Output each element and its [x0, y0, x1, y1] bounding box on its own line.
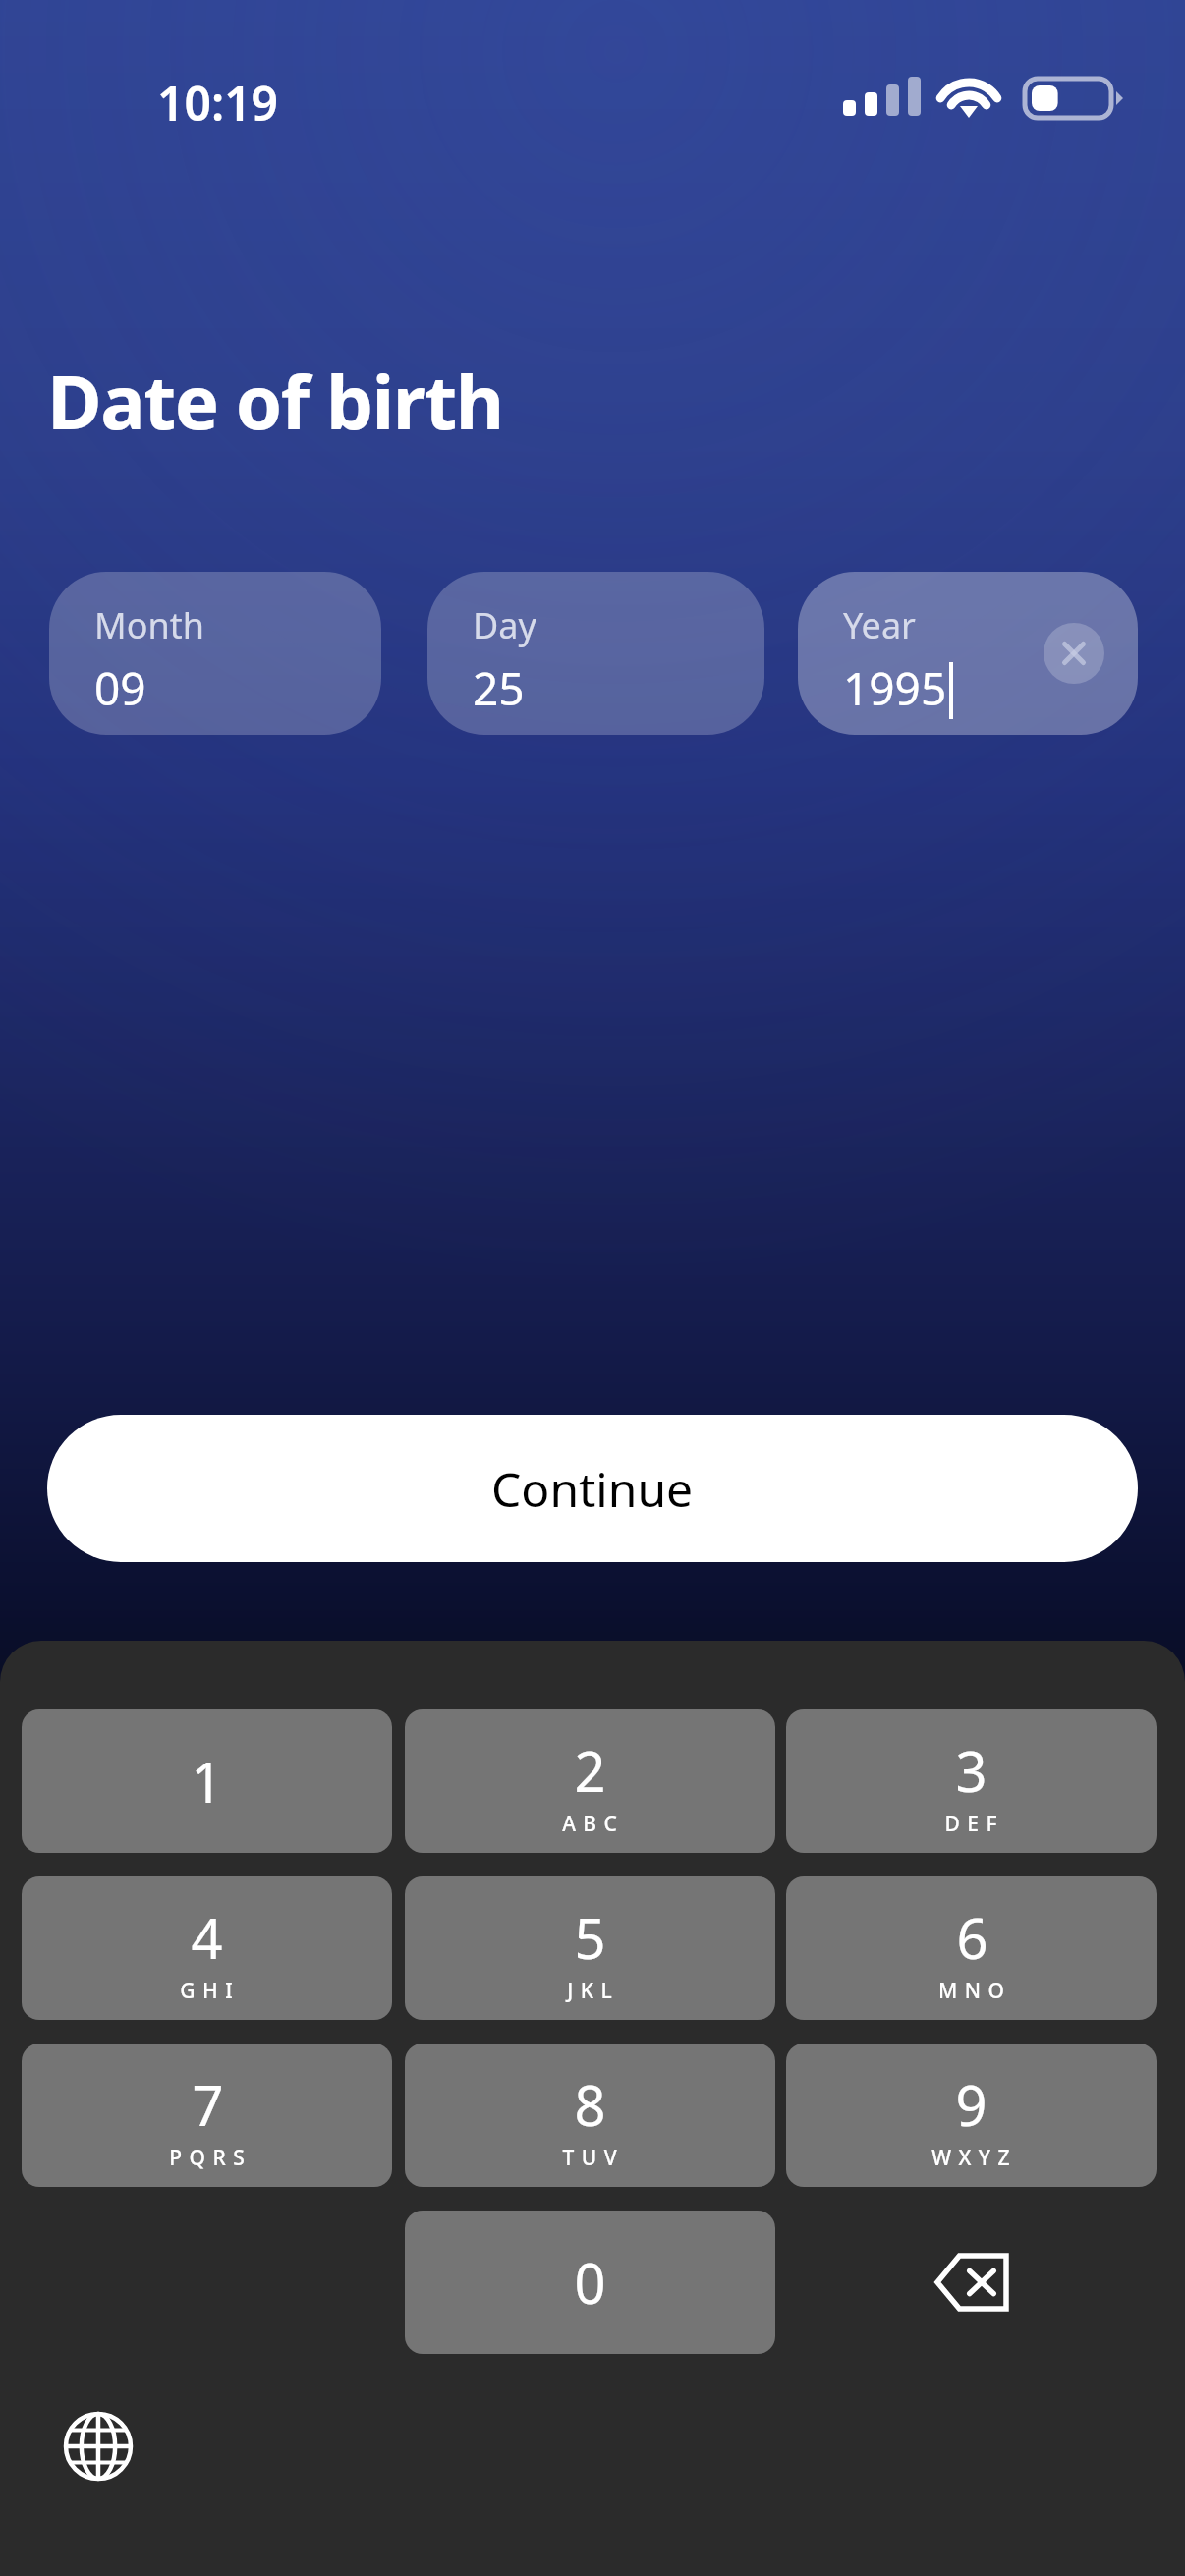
button[interactable]: Switch keyboard language	[59, 2407, 138, 2486]
staticText: 10:19	[157, 71, 279, 135]
staticText: 5	[574, 1900, 606, 1975]
staticText: Month	[94, 601, 204, 649]
button[interactable]: Day	[427, 572, 764, 735]
staticText: W X Y Z	[931, 2144, 1011, 2172]
staticText: 9	[955, 2067, 987, 2142]
button[interactable]: 9	[786, 2044, 1157, 2187]
staticText: 1	[191, 1744, 223, 1819]
button[interactable]: 6	[786, 1876, 1157, 2020]
staticText: 2	[574, 1733, 606, 1808]
staticText: 1995	[843, 657, 947, 719]
staticText: T U V	[562, 2144, 618, 2172]
staticText: 09	[94, 657, 146, 719]
button[interactable]: 4	[22, 1876, 392, 2020]
staticText: 25	[473, 657, 525, 719]
button[interactable]: 0	[405, 2211, 775, 2354]
staticText: 4	[191, 1900, 223, 1975]
staticText: 6	[956, 1900, 988, 1975]
button[interactable]: 3	[786, 1709, 1157, 1853]
staticText: 7	[192, 2067, 224, 2142]
staticText: Year	[843, 601, 916, 649]
staticText: 0	[574, 2245, 606, 2320]
button[interactable]: Year	[798, 572, 1138, 735]
button[interactable]: 2	[405, 1709, 775, 1853]
staticText: P Q R S	[169, 2144, 246, 2172]
button[interactable]: Continue	[47, 1415, 1138, 1562]
staticText: Day	[473, 601, 536, 649]
button[interactable]: 8	[405, 2044, 775, 2187]
button[interactable]: 5	[405, 1876, 775, 2020]
button[interactable]: 1	[22, 1709, 392, 1853]
button[interactable]: Backspace	[786, 2211, 1157, 2354]
button[interactable]: 7	[22, 2044, 392, 2187]
button[interactable]: Clear year	[1044, 623, 1104, 684]
staticText: J K L	[567, 1977, 613, 2005]
staticText: A B C	[562, 1810, 618, 1838]
staticText: M N O	[938, 1977, 1005, 2005]
button[interactable]: Month	[49, 572, 381, 735]
staticText: 3	[955, 1733, 987, 1808]
staticText: Continue	[491, 1457, 694, 1521]
staticText: Date of birth	[47, 350, 503, 452]
staticText: 8	[574, 2067, 606, 2142]
staticText: G H I	[180, 1977, 234, 2005]
staticText: D E F	[944, 1810, 998, 1838]
